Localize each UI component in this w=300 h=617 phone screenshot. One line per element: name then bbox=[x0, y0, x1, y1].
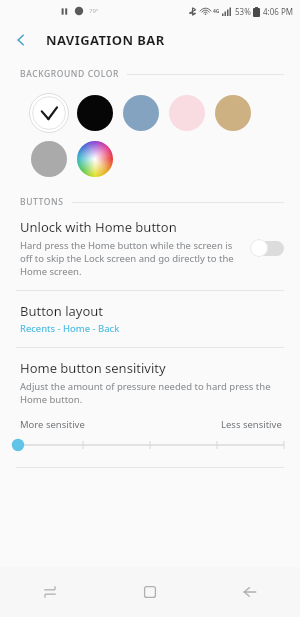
button[interactable]: Back bbox=[8, 27, 34, 53]
button[interactable]: Color 3 bbox=[164, 90, 210, 136]
staticText: Less sensitive bbox=[221, 418, 282, 431]
button[interactable]: Color 2 bbox=[118, 90, 164, 136]
staticText: 4:06 PM bbox=[263, 6, 294, 17]
staticText: BUTTONS bbox=[20, 196, 64, 208]
staticText: Adjust the amount of pressure needed to … bbox=[20, 380, 280, 406]
staticText: BACKGROUND COLOR bbox=[20, 68, 119, 80]
button[interactable]: Unlock with Home button toggle bbox=[250, 235, 286, 261]
button[interactable]: Home bbox=[100, 567, 200, 617]
staticText: More sensitive bbox=[20, 418, 85, 431]
staticText: 4G bbox=[213, 8, 220, 15]
button[interactable]: Color 1 bbox=[72, 90, 118, 136]
button[interactable]: Gray color bbox=[26, 136, 72, 182]
staticText: Home button sensitivity bbox=[20, 359, 166, 377]
staticText: Button layout bbox=[20, 302, 104, 320]
button[interactable]: Unlock with Home button bbox=[0, 208, 300, 290]
staticText: 79° bbox=[89, 7, 99, 15]
staticText: 53% bbox=[235, 6, 251, 17]
staticText: Unlock with Home button bbox=[20, 218, 177, 236]
staticText: Recents - Home - Back bbox=[20, 322, 120, 335]
button[interactable]: Home button sensitivity slider bbox=[0, 435, 300, 455]
button[interactable]: Color 4 bbox=[210, 90, 256, 136]
staticText: Hard press the Home button while the scr… bbox=[20, 239, 242, 278]
button[interactable]: Custom color bbox=[72, 136, 118, 182]
button[interactable]: Color 0 bbox=[26, 90, 72, 136]
staticText: NAVIGATION BAR bbox=[46, 31, 165, 49]
button[interactable]: Back bbox=[200, 567, 300, 617]
button[interactable]: Recents bbox=[0, 567, 100, 617]
button[interactable]: Button layout bbox=[0, 291, 300, 347]
